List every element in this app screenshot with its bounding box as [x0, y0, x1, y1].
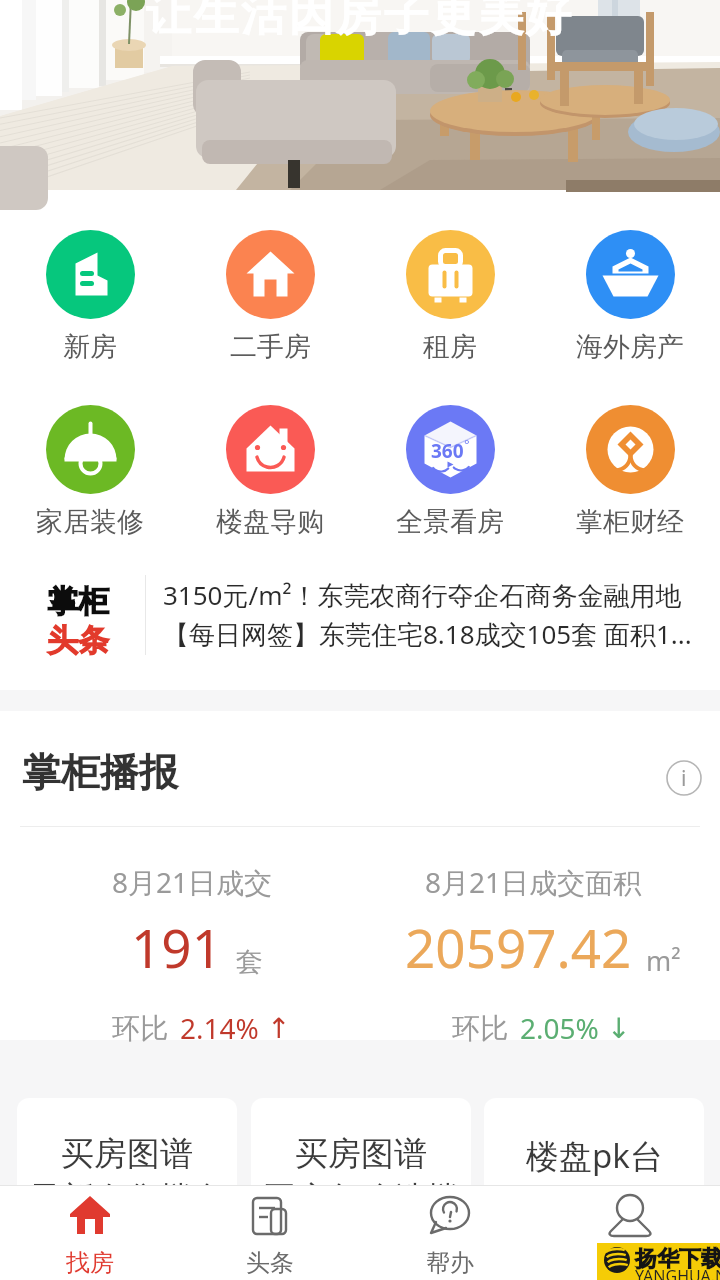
staticText: 找房: [66, 1248, 114, 1278]
button[interactable]: 帮办: [360, 1185, 540, 1280]
button[interactable]: 二手房: [180, 230, 360, 364]
button[interactable]: 8月21日成交面积: [405, 851, 705, 1041]
button[interactable]: 楼盘pk台: [484, 1098, 704, 1268]
staticText: 让生活因房子更美好: [146, 0, 574, 44]
staticText: ↑: [267, 1012, 291, 1045]
staticText: 楼盘导购: [216, 505, 324, 539]
staticText: 20597.42: [405, 911, 632, 983]
button[interactable]: Info: [666, 760, 702, 796]
button[interactable]: 楼盘导购: [180, 405, 360, 539]
staticText: 二手房: [230, 330, 311, 364]
staticText: 套: [236, 945, 263, 979]
staticText: °: [464, 435, 470, 453]
staticText: 8月21日成交: [112, 863, 273, 901]
staticText: 2.05%: [520, 1009, 599, 1047]
button[interactable]: 我的: [540, 1185, 720, 1280]
staticText: 掌柜播报: [22, 748, 178, 797]
button[interactable]: 买房图谱: [17, 1098, 237, 1268]
button[interactable]: 找房: [0, 1185, 180, 1280]
staticText: 租房: [423, 330, 477, 364]
staticText: 我的: [606, 1248, 654, 1278]
staticText: 头条: [246, 1248, 294, 1278]
button[interactable]: 新房: [0, 230, 180, 364]
staticText: m²: [646, 942, 681, 979]
button[interactable]: 掌柜: [0, 561, 720, 689]
staticText: 191: [131, 911, 222, 983]
button[interactable]: 头条: [180, 1185, 360, 1280]
staticText: 环比: [112, 1011, 168, 1046]
staticText: 全景看房: [396, 505, 504, 539]
button[interactable]: 租房: [360, 230, 540, 364]
staticText: 最新在售楼盘: [28, 1178, 226, 1220]
staticText: YANGHUA.NET: [635, 1265, 720, 1280]
staticText: 帮办: [426, 1248, 474, 1278]
staticText: 掌柜财经: [576, 505, 684, 539]
button[interactable]: 海外房产: [540, 230, 720, 364]
staticText: 2.14%: [180, 1009, 259, 1047]
staticText: 环比: [452, 1011, 508, 1046]
button[interactable]: Banner: [0, 0, 720, 190]
staticText: 买房图谱: [295, 1133, 427, 1175]
staticText: 家居装修: [36, 505, 144, 539]
staticText: 【每日网签】东莞住宅8.18成交105套 面积1...: [163, 616, 692, 652]
staticText: i: [681, 764, 687, 793]
staticText: 莞北楼盘对台: [495, 1181, 693, 1223]
staticText: 360: [431, 438, 464, 464]
staticText: 扬华下载: [635, 1245, 720, 1273]
staticText: 海外房产: [576, 330, 684, 364]
button[interactable]: 买房图谱: [251, 1098, 471, 1268]
button[interactable]: 360: [360, 405, 540, 539]
button[interactable]: 8月21日成交: [92, 851, 392, 1041]
staticText: 掌柜: [47, 582, 109, 621]
staticText: 新房: [63, 330, 117, 364]
staticText: 3150元/m²！东莞农商行夺企石商务金融用地: [163, 577, 682, 613]
staticText: 楼盘pk台: [526, 1133, 663, 1178]
button[interactable]: 家居装修: [0, 405, 180, 539]
staticText: 头条: [47, 621, 109, 660]
staticText: 8月21日成交面积: [425, 863, 642, 901]
staticText: 买房图谱: [61, 1133, 193, 1175]
button[interactable]: 掌柜财经: [540, 405, 720, 539]
staticText: 买房怎么选楼: [262, 1178, 460, 1220]
staticText: ↓: [607, 1012, 631, 1045]
